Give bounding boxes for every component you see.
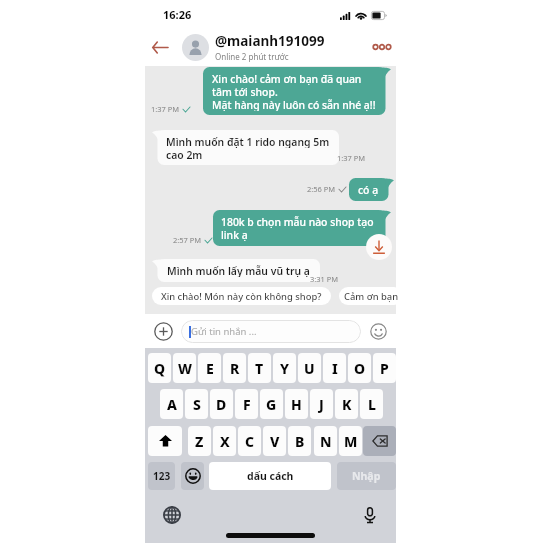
button[interactable]: P: [373, 353, 396, 383]
staticText: 123: [153, 469, 171, 483]
button[interactable]: M: [339, 426, 362, 456]
staticText: A: [167, 395, 177, 414]
staticText: Gửi tin nhắn ...: [191, 325, 257, 338]
button[interactable]: có ạ: [349, 178, 394, 201]
button[interactable]: T: [248, 353, 271, 383]
button[interactable]: Xin chào! cảm ơn bạn đã quan: [203, 67, 391, 115]
button[interactable]: I: [323, 353, 346, 383]
staticText: V: [270, 432, 280, 451]
staticText: link ạ: [221, 228, 248, 241]
staticText: L: [368, 395, 376, 414]
button[interactable]: S: [185, 389, 208, 419]
button[interactable]: Shift: [148, 426, 182, 456]
button[interactable]: Xin chào! Món này còn không shop?: [152, 287, 331, 305]
button[interactable]: Voice input: [359, 504, 381, 526]
button[interactable]: L: [360, 389, 383, 419]
staticText: E: [206, 359, 214, 378]
button[interactable]: X: [213, 426, 236, 456]
button[interactable]: N: [314, 426, 337, 456]
button[interactable]: J: [310, 389, 333, 419]
staticText: H: [291, 395, 302, 414]
button[interactable]: F: [235, 389, 258, 419]
button[interactable]: O: [348, 353, 371, 383]
staticText: D: [216, 395, 227, 414]
staticText: tâm tới shop.: [212, 85, 278, 98]
button[interactable]: Add attachment: [153, 321, 173, 341]
staticText: C: [245, 432, 255, 451]
button[interactable]: Z: [188, 426, 211, 456]
button[interactable]: B: [288, 426, 311, 456]
staticText: X: [220, 432, 230, 451]
staticText: I: [332, 359, 338, 378]
staticText: Z: [195, 432, 204, 451]
button[interactable]: dấu cách: [209, 462, 331, 490]
staticText: 16:26: [163, 7, 192, 22]
staticText: Y: [280, 359, 290, 378]
button[interactable]: Nhập: [337, 462, 396, 490]
button[interactable]: Download: [366, 234, 392, 260]
staticText: R: [230, 359, 240, 378]
button[interactable]: G: [260, 389, 283, 419]
button[interactable]: Emoji keyboard: [181, 462, 204, 490]
staticText: U: [304, 359, 315, 378]
button[interactable]: Cảm ơn bạn: [339, 287, 403, 305]
button[interactable]: Q: [148, 353, 171, 383]
staticText: Mình muốn đặt 1 rido ngang 5m: [166, 135, 330, 148]
staticText: B: [295, 432, 305, 451]
staticText: Xin chào! Món này còn không shop?: [161, 290, 322, 303]
staticText: M: [344, 432, 358, 451]
button[interactable]: Numbers: [148, 462, 175, 490]
button[interactable]: C: [238, 426, 261, 456]
staticText: W: [178, 359, 192, 378]
staticText: G: [266, 395, 277, 414]
staticText: Online 2 phút trước: [215, 51, 289, 62]
staticText: @maianh191099: [215, 32, 325, 50]
button[interactable]: R: [223, 353, 246, 383]
staticText: 2:57 PM: [173, 235, 202, 245]
staticText: P: [380, 359, 389, 378]
button[interactable]: Mình muốn lấy mẫu vũ trụ ạ: [152, 259, 320, 282]
staticText: dấu cách: [247, 469, 294, 483]
button[interactable]: More options: [370, 35, 394, 59]
staticText: 2:56 PM: [307, 184, 336, 194]
staticText: 3:31 PM: [310, 274, 339, 284]
button[interactable]: Change keyboard: [162, 505, 182, 525]
button[interactable]: D: [210, 389, 233, 419]
button[interactable]: A: [160, 389, 183, 419]
button[interactable]: Backspace: [363, 426, 396, 456]
staticText: 180k b chọn mẫu nào shop tạo: [221, 215, 374, 228]
button[interactable]: Back: [148, 35, 172, 59]
staticText: Cảm ơn bạn: [344, 290, 399, 303]
staticText: S: [193, 395, 201, 414]
staticText: Mình muốn lấy mẫu vũ trụ ạ: [167, 264, 310, 277]
staticText: 1:37 PM: [337, 153, 366, 163]
staticText: 1:37 PM: [151, 104, 180, 114]
staticText: O: [354, 359, 366, 378]
staticText: Mặt hàng này luôn có sẵn nhé ạ!!: [212, 98, 376, 111]
button[interactable]: E: [198, 353, 221, 383]
staticText: cao 2m: [166, 148, 203, 161]
button[interactable]: U: [298, 353, 321, 383]
button[interactable]: W: [173, 353, 196, 383]
button[interactable]: Mình muốn đặt 1 rido ngang 5m: [152, 130, 339, 165]
staticText: có ạ: [358, 183, 379, 196]
staticText: Nhập: [352, 469, 381, 483]
staticText: J: [319, 395, 324, 414]
button[interactable]: Emoji: [368, 321, 388, 341]
button[interactable]: H: [285, 389, 308, 419]
staticText: Q: [154, 359, 166, 378]
staticText: Xin chào! cảm ơn bạn đã quan: [212, 72, 362, 85]
staticText: T: [255, 359, 264, 378]
button[interactable]: V: [263, 426, 286, 456]
staticText: K: [342, 395, 352, 414]
staticText: F: [243, 395, 251, 414]
button[interactable]: 180k b chọn mẫu nào shop tạo: [213, 210, 391, 246]
staticText: N: [320, 432, 332, 451]
button[interactable]: Y: [273, 353, 296, 383]
button[interactable]: Gửi tin nhắn ...: [181, 320, 361, 343]
button[interactable]: K: [335, 389, 358, 419]
